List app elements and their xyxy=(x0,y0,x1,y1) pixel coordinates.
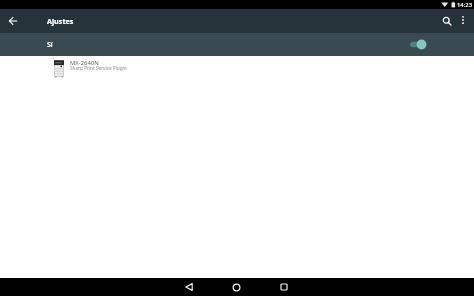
staticText: MX-2640N xyxy=(70,59,99,67)
button[interactable] xyxy=(277,280,291,294)
button[interactable]: Sí xyxy=(0,33,474,56)
button[interactable] xyxy=(404,34,430,55)
button[interactable] xyxy=(2,9,23,33)
button[interactable] xyxy=(229,280,243,294)
staticText: Sharp Print Service Plugin xyxy=(70,65,127,71)
staticText: Ajustes xyxy=(47,16,74,26)
button[interactable]: MX-2640N xyxy=(0,56,474,82)
button[interactable] xyxy=(182,280,196,294)
staticText: Sí xyxy=(47,40,53,50)
button[interactable] xyxy=(456,13,470,27)
button[interactable] xyxy=(439,13,455,29)
staticText: 14:23 xyxy=(457,1,473,9)
